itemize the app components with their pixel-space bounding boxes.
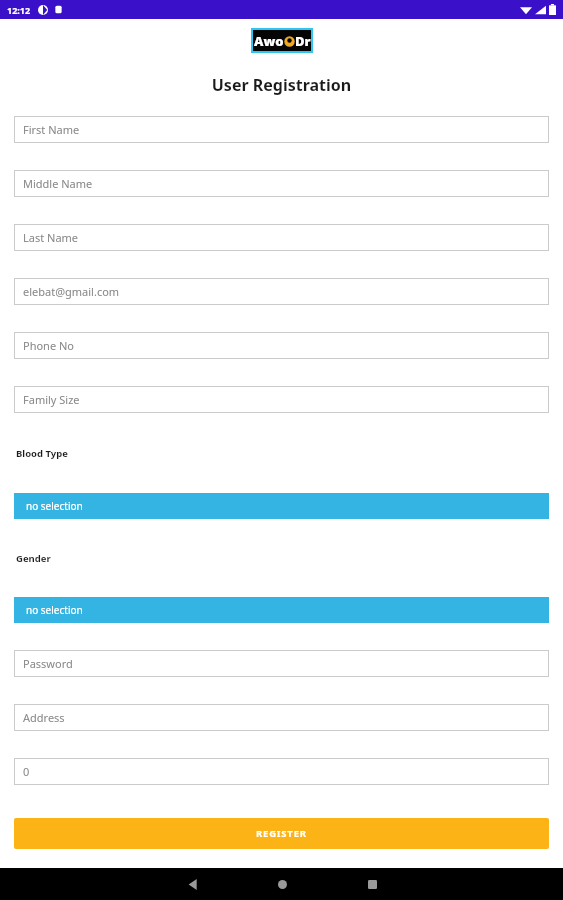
button[interactable]: 0	[14, 758, 549, 785]
button[interactable]: First Name	[14, 116, 549, 143]
staticText: no selection	[26, 499, 83, 513]
staticText: Phone No	[23, 338, 74, 353]
button[interactable]: Family Size	[14, 386, 549, 413]
staticText: Last Name	[23, 230, 79, 245]
button[interactable]: Address	[14, 704, 549, 731]
staticText: Awo	[254, 32, 284, 50]
button[interactable]: Last Name	[14, 224, 549, 251]
button[interactable]: Home	[258, 868, 306, 900]
staticText: elebat@gmail.com	[23, 284, 120, 299]
button[interactable]: no selection	[14, 493, 549, 519]
staticText: REGISTER	[256, 827, 307, 840]
staticText: Family Size	[23, 392, 80, 407]
staticText: no selection	[26, 603, 83, 617]
button[interactable]: AwoDr logo	[253, 30, 311, 51]
staticText: Middle Name	[23, 176, 93, 191]
button[interactable]: Password	[14, 650, 549, 677]
button[interactable]: REGISTER	[14, 818, 549, 849]
staticText: Dr	[295, 32, 311, 50]
staticText: Address	[23, 710, 65, 725]
button[interactable]: Middle Name	[14, 170, 549, 197]
button[interactable]: no selection	[14, 597, 549, 623]
button[interactable]: Recent apps	[348, 868, 396, 900]
button[interactable]: Back	[168, 868, 216, 900]
staticText: Gender	[16, 552, 51, 565]
staticText: Password	[23, 656, 73, 671]
button[interactable]: Phone No	[14, 332, 549, 359]
button[interactable]: elebat@gmail.com	[14, 278, 549, 305]
staticText: First Name	[23, 122, 80, 137]
staticText: Blood Type	[16, 447, 68, 460]
staticText: 12:12	[7, 4, 31, 16]
staticText: 0	[23, 764, 30, 779]
staticText: User Registration	[0, 74, 563, 96]
